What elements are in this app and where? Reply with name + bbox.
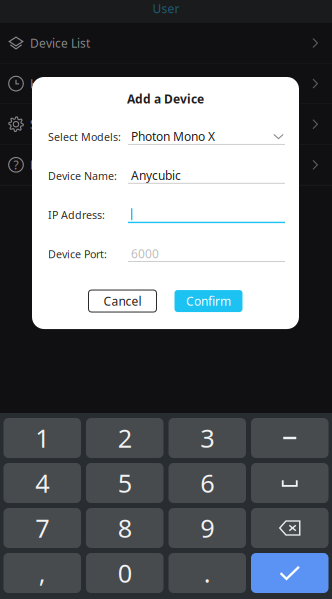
staticText: 4 bbox=[35, 466, 49, 500]
button[interactable]: 9 bbox=[168, 508, 246, 548]
staticText: 6 bbox=[200, 466, 214, 500]
staticText: Confirm bbox=[186, 293, 231, 309]
staticText: 8 bbox=[118, 511, 132, 545]
button[interactable]: Delete bbox=[251, 508, 328, 548]
staticText: IP Address: bbox=[48, 208, 105, 222]
button[interactable]: Device List bbox=[0, 23, 332, 64]
staticText: , bbox=[39, 556, 46, 590]
staticText: . bbox=[204, 556, 211, 590]
button[interactable]: 6 bbox=[168, 463, 246, 503]
staticText: 7 bbox=[35, 511, 49, 545]
staticText: 0 bbox=[118, 556, 132, 590]
button[interactable]: 1 bbox=[3, 418, 81, 458]
staticText: Select Models: bbox=[48, 130, 121, 144]
button[interactable]: Done bbox=[251, 553, 328, 593]
button[interactable]: Period bbox=[168, 553, 246, 593]
staticText: Settings bbox=[30, 116, 75, 132]
button[interactable]: Settings bbox=[0, 104, 332, 145]
staticText: Device List bbox=[30, 35, 90, 51]
staticText: History bbox=[30, 76, 70, 91]
button[interactable]: Space bbox=[251, 463, 328, 503]
button[interactable]: Comma bbox=[3, 553, 81, 593]
staticText: Device Name: bbox=[48, 169, 117, 183]
button[interactable]: 0 bbox=[86, 553, 163, 593]
button[interactable]: 3 bbox=[168, 418, 246, 458]
staticText: User bbox=[152, 0, 179, 16]
staticText: Device Port: bbox=[48, 247, 107, 261]
staticText: 2 bbox=[118, 421, 132, 455]
button[interactable]: Minus bbox=[251, 418, 328, 458]
button[interactable]: ? bbox=[0, 145, 332, 185]
staticText: Anycubic bbox=[131, 167, 181, 183]
staticText: 6000 bbox=[131, 246, 159, 262]
button[interactable]: 2 bbox=[86, 418, 163, 458]
button[interactable]: Confirm bbox=[174, 290, 242, 312]
button[interactable]: 5 bbox=[86, 463, 163, 503]
staticText: 5 bbox=[118, 466, 132, 500]
staticText: Help bbox=[30, 157, 56, 173]
staticText: Add a Device bbox=[127, 91, 204, 107]
button[interactable]: Cancel bbox=[88, 290, 156, 312]
button[interactable]: 8 bbox=[86, 508, 163, 548]
staticText: 1 bbox=[35, 421, 49, 455]
button[interactable]: 7 bbox=[3, 508, 81, 548]
button[interactable]: History bbox=[0, 64, 332, 104]
staticText: 9 bbox=[200, 511, 214, 545]
staticText: 3 bbox=[200, 421, 214, 455]
button[interactable]: 4 bbox=[3, 463, 81, 503]
staticText: Cancel bbox=[103, 293, 141, 309]
staticText: Photon Mono X bbox=[131, 128, 215, 144]
staticText: ? bbox=[13, 157, 18, 173]
